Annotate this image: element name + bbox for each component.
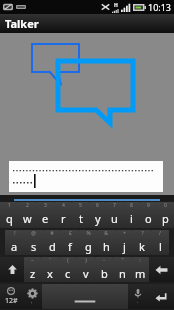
staticText: 6 (96, 202, 99, 209)
staticText: i (130, 211, 133, 226)
staticText: 1 (8, 202, 11, 209)
button[interactable]: % (79, 230, 97, 255)
staticText: c (65, 266, 71, 281)
staticText: & (104, 230, 108, 237)
staticText: j (123, 239, 126, 254)
staticText: . (137, 298, 139, 305)
staticText: £ (69, 230, 72, 237)
button[interactable]: 3 (36, 202, 54, 228)
staticText: @ (31, 230, 36, 237)
button[interactable]: ` (41, 257, 59, 282)
staticText: e (42, 211, 49, 226)
staticText: k (139, 239, 145, 254)
staticText: p (162, 211, 169, 226)
button[interactable]: : (131, 257, 149, 282)
staticText: % (86, 230, 91, 237)
button[interactable]: & (97, 230, 115, 255)
staticText: z (30, 266, 36, 281)
button[interactable]: 12# (0, 284, 22, 309)
button[interactable]: " (113, 257, 131, 282)
staticText: 8 (130, 202, 133, 209)
staticText: ( (67, 257, 69, 264)
staticText: ` (49, 257, 51, 264)
staticText: 12# (5, 296, 18, 306)
staticText: ! (14, 230, 16, 237)
button[interactable]: 4 (54, 202, 72, 228)
button[interactable]: Space (42, 284, 128, 309)
button[interactable]: 8 (123, 202, 140, 228)
button[interactable]: ( (59, 257, 77, 282)
staticText: # (50, 230, 54, 237)
button[interactable]: Shift (0, 257, 24, 282)
staticText: 9 (147, 202, 150, 209)
staticText: t (79, 211, 83, 226)
staticText: 7 (113, 202, 116, 209)
button[interactable]: 2 (18, 202, 36, 228)
button[interactable]: Talker (0, 14, 174, 33)
button[interactable]: ? (133, 230, 151, 255)
staticText: ? (141, 230, 144, 237)
staticText: Talker (5, 16, 39, 31)
staticText: 10:13 (148, 1, 172, 13)
staticText: d (49, 239, 56, 254)
staticText: 2 (26, 202, 29, 209)
staticText: ) (85, 257, 87, 264)
button[interactable]: Backspace (149, 257, 174, 282)
button[interactable]: Voice input (128, 284, 148, 309)
button[interactable]: + (115, 230, 133, 255)
staticText: h (103, 239, 110, 254)
staticText: b (101, 266, 108, 281)
button[interactable]: 0 (157, 202, 174, 228)
staticText: - (103, 257, 105, 264)
staticText: / (159, 230, 161, 237)
button[interactable]: 9 (140, 202, 157, 228)
button[interactable]: Settings (22, 284, 42, 309)
button[interactable]: £ (61, 230, 79, 255)
staticText: 5 (79, 202, 82, 209)
button[interactable]: ~ (24, 257, 41, 282)
staticText: l (159, 239, 162, 254)
staticText: s (31, 239, 37, 254)
button[interactable]: ) (77, 257, 95, 282)
button[interactable]: 7 (106, 202, 123, 228)
button[interactable]: Enter (148, 284, 174, 309)
staticText: r (61, 211, 66, 226)
staticText: x (47, 266, 53, 281)
staticText: + (123, 230, 126, 237)
staticText: g (85, 239, 92, 254)
button[interactable]: / (151, 230, 169, 255)
staticText: q (6, 211, 13, 226)
staticText: , (31, 298, 33, 305)
staticText: o (145, 211, 152, 226)
button[interactable]: @ (24, 230, 43, 255)
button[interactable] (9, 161, 163, 192)
staticText: " (121, 257, 124, 264)
button[interactable]: 6 (89, 202, 106, 228)
staticText: H (114, 2, 118, 9)
staticText: : (139, 257, 141, 264)
staticText: f (68, 239, 72, 254)
staticText: m (135, 266, 146, 281)
staticText: a (11, 239, 18, 254)
staticText: ~ (31, 257, 34, 264)
staticText: v (83, 266, 89, 281)
staticText: w (23, 211, 32, 226)
staticText: n (119, 266, 126, 281)
button[interactable]: ! (5, 230, 24, 255)
staticText: y (95, 211, 101, 226)
staticText: 0 (164, 202, 167, 209)
button[interactable]: 1 (0, 202, 18, 228)
staticText: 4 (62, 202, 65, 209)
button[interactable]: 5 (72, 202, 89, 228)
button[interactable]: - (95, 257, 113, 282)
staticText: u (111, 211, 118, 226)
button[interactable]: # (43, 230, 61, 255)
staticText: 3 (44, 202, 47, 209)
